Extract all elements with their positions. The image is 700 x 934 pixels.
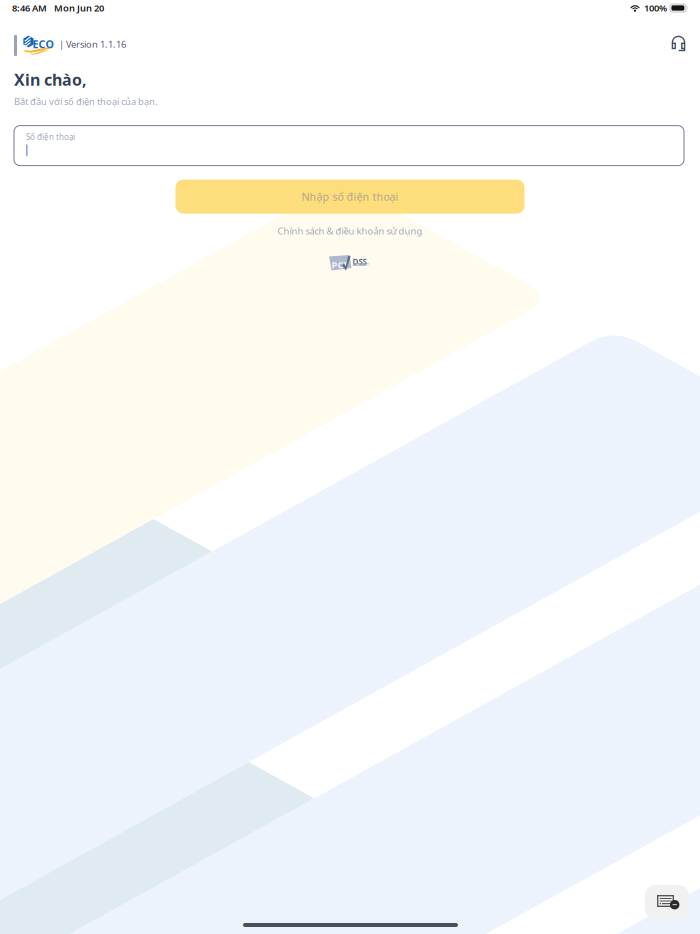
staticText: 100% (644, 2, 667, 14)
staticText: ECO (33, 37, 54, 51)
staticText: Nhập số điện thoại (301, 190, 398, 204)
staticText: 8:46 AM (12, 2, 47, 14)
staticText: Mon Jun 20 (54, 2, 104, 14)
staticText: COMPLIANT (352, 262, 369, 265)
staticText: Chính sách & điều khoản sử dụng (277, 225, 422, 237)
staticText: | Version 1.1.16 (59, 38, 126, 50)
staticText: PCI (331, 258, 347, 271)
button[interactable]: Chính sách & điều khoản sử dụng (277, 225, 422, 237)
staticText: DSS (352, 256, 366, 267)
staticText: Bắt đầu với số điện thoại của bạn. (14, 95, 158, 108)
button[interactable]: Customer support (671, 35, 686, 52)
staticText: Số điện thoại (26, 132, 75, 142)
button[interactable]: Nhập số điện thoại (175, 180, 524, 214)
staticText: Xin chào, (14, 69, 87, 90)
button[interactable]: Hide keyboard (645, 885, 689, 919)
